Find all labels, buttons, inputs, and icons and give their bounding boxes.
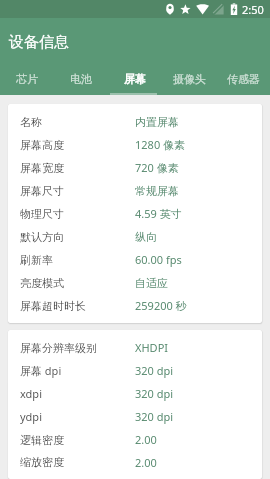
staticText: 逻辑密度: [20, 433, 64, 447]
staticText: 常规屏幕: [135, 184, 179, 198]
button[interactable]: 屏幕宽度: [8, 156, 262, 179]
staticText: 刷新率: [20, 253, 53, 267]
staticText: 自适应: [135, 276, 168, 290]
button[interactable]: 屏幕: [108, 65, 162, 92]
button[interactable]: 屏幕超时时长: [8, 294, 262, 317]
staticText: 芯片: [16, 72, 38, 86]
button[interactable]: 物理尺寸: [8, 202, 262, 225]
staticText: 缩放密度: [20, 455, 64, 469]
staticText: 60.00 fps: [135, 252, 182, 267]
staticText: 名称: [20, 115, 42, 129]
staticText: 屏幕 dpi: [20, 363, 62, 378]
button[interactable]: 刷新率: [8, 248, 262, 271]
staticText: 屏幕分辨率级别: [20, 341, 97, 355]
staticText: xdpi: [20, 386, 42, 401]
staticText: 屏幕: [124, 72, 146, 86]
staticText: 电池: [70, 72, 92, 86]
staticText: 2.00: [135, 455, 157, 470]
button[interactable]: xdpi: [8, 382, 262, 405]
staticText: 2:50: [242, 2, 264, 17]
staticText: 320 dpi: [135, 409, 174, 424]
button[interactable]: 缩放密度: [8, 451, 262, 473]
staticText: 320 dpi: [135, 363, 174, 378]
button[interactable]: 屏幕高度: [8, 133, 262, 156]
button[interactable]: 芯片: [0, 65, 54, 92]
staticText: 2.00: [135, 432, 157, 447]
staticText: 物理尺寸: [20, 207, 64, 221]
staticText: 320 dpi: [135, 386, 174, 401]
button[interactable]: 摄像头: [162, 65, 216, 92]
button[interactable]: ydpi: [8, 405, 262, 428]
staticText: 传感器: [227, 72, 260, 86]
staticText: XHDPI: [135, 340, 169, 355]
staticText: 设备信息: [9, 33, 69, 52]
button[interactable]: 屏幕 dpi: [8, 359, 262, 382]
staticText: 屏幕高度: [20, 138, 64, 152]
button[interactable]: 名称: [8, 110, 262, 133]
staticText: 259200 秒: [135, 298, 187, 313]
staticText: 亮度模式: [20, 276, 64, 290]
staticText: 屏幕尺寸: [20, 184, 64, 198]
staticText: 内置屏幕: [135, 115, 179, 129]
staticText: 720 像素: [135, 160, 179, 175]
button[interactable]: 屏幕分辨率级别: [8, 336, 262, 359]
staticText: 摄像头: [173, 72, 206, 86]
staticText: 纵向: [135, 230, 157, 244]
button[interactable]: 传感器: [216, 65, 270, 92]
staticText: 屏幕超时时长: [20, 299, 86, 313]
staticText: ydpi: [20, 409, 42, 424]
button[interactable]: 逻辑密度: [8, 428, 262, 451]
staticText: 4.59 英寸: [135, 206, 182, 221]
button[interactable]: 亮度模式: [8, 271, 262, 294]
staticText: 屏幕宽度: [20, 161, 64, 175]
staticText: 默认方向: [20, 230, 64, 244]
staticText: 1280 像素: [135, 137, 186, 152]
button[interactable]: 电池: [54, 65, 108, 92]
button[interactable]: 屏幕尺寸: [8, 179, 262, 202]
button[interactable]: 默认方向: [8, 225, 262, 248]
